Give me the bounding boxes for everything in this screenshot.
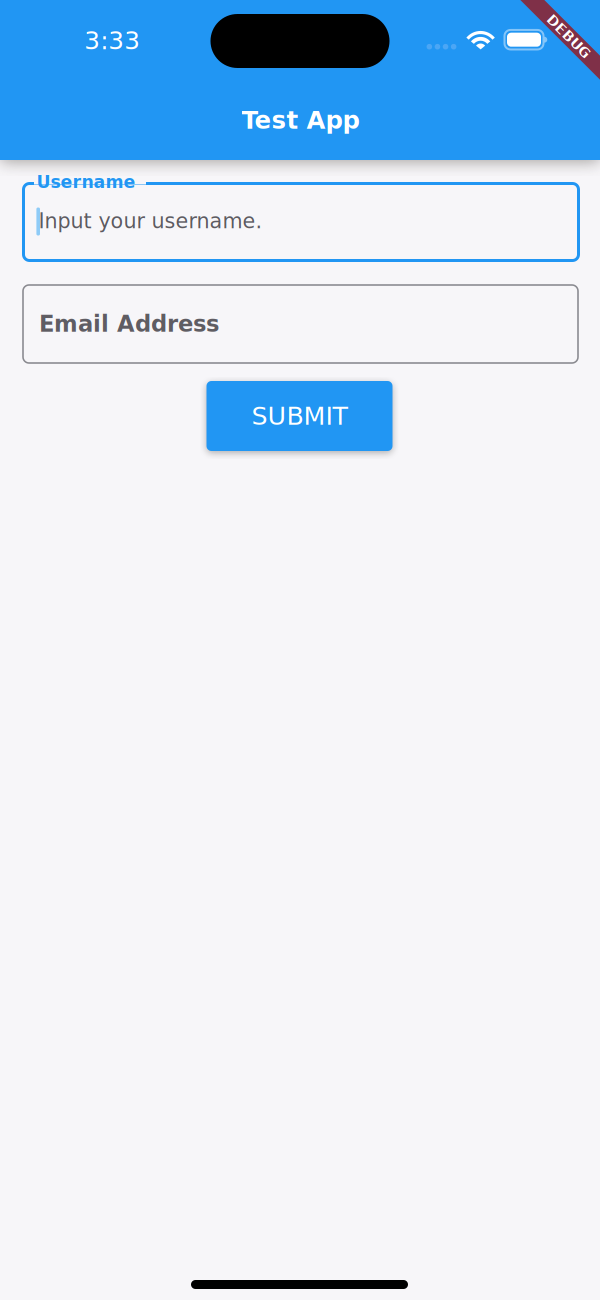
button[interactable]: SUBMIT bbox=[206, 381, 392, 451]
staticText: SUBMIT bbox=[251, 401, 347, 431]
staticText: Email Address bbox=[39, 311, 219, 337]
staticText: Test App bbox=[241, 106, 359, 134]
staticText: 3:33 bbox=[84, 26, 140, 55]
staticText: DEBUG bbox=[541, 28, 596, 44]
staticText: Username bbox=[36, 172, 135, 192]
staticText: Input your username. bbox=[38, 209, 262, 233]
